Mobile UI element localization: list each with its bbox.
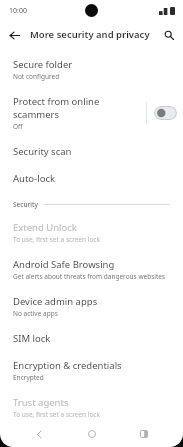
button[interactable]: SIM lock [0, 325, 183, 352]
button[interactable]: Trust agents [0, 389, 183, 421]
button[interactable]: Extend Unlock [0, 214, 183, 251]
button[interactable]: Protect from online scammers [0, 88, 183, 138]
staticText: Device admin apps [13, 295, 98, 308]
button[interactable]: Android Safe Browsing [0, 251, 183, 288]
staticText: More security and privacy [30, 28, 150, 41]
button[interactable]: Back [3, 24, 25, 46]
staticText: To use, first set a screen lock [13, 410, 100, 419]
staticText: Not configured [13, 72, 60, 81]
staticText: Android Safe Browsing [13, 258, 115, 271]
button[interactable]: Secure folder [0, 51, 183, 88]
staticText: SIM lock [13, 332, 51, 345]
staticText: Extend Unlock [13, 221, 77, 234]
staticText: To use, first set a screen lock [13, 235, 100, 244]
staticText: Off [13, 122, 23, 131]
button[interactable]: Back [26, 421, 52, 447]
staticText: Protect from online scammers [13, 95, 140, 121]
staticText: Secure folder [13, 58, 73, 71]
button[interactable]: Protect from online scammers toggle [154, 106, 177, 120]
staticText: Get alerts about threats from dangerous … [13, 272, 166, 281]
button[interactable]: Home [79, 421, 105, 447]
button[interactable]: Device admin apps [0, 288, 183, 325]
staticText: Encryption & credentials [13, 359, 122, 372]
staticText: Security [13, 200, 38, 209]
staticText: Auto-lock [13, 172, 56, 185]
button[interactable]: Recent apps [131, 421, 157, 447]
staticText: Encrypted [13, 373, 44, 382]
staticText: 10:00 [9, 6, 27, 16]
staticText: Security scan [13, 145, 72, 158]
button[interactable]: Search [158, 24, 180, 46]
button[interactable]: Auto-lock [0, 165, 183, 192]
button[interactable]: Encryption & credentials [0, 352, 183, 389]
button[interactable]: Security scan [0, 138, 183, 165]
staticText: Trust agents [13, 396, 69, 409]
staticText: No active apps [13, 309, 58, 318]
